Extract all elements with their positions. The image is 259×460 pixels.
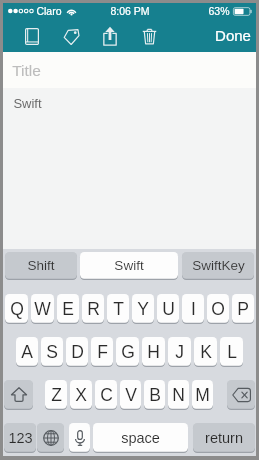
button[interactable]: Backspace — [227, 380, 255, 410]
button[interactable]: Z — [45, 380, 67, 410]
staticText: A — [21, 342, 33, 362]
button[interactable]: Tags — [58, 22, 84, 50]
button[interactable]: Swift — [3, 88, 256, 249]
staticText: S — [46, 342, 58, 362]
button[interactable]: Swift — [80, 252, 178, 280]
staticText: Swift — [114, 258, 144, 273]
button[interactable]: return — [193, 423, 255, 453]
staticText: B — [149, 385, 161, 405]
staticText: Shift — [27, 258, 55, 273]
staticText: R — [87, 299, 100, 319]
button[interactable]: D — [66, 337, 88, 367]
button[interactable]: space — [93, 423, 188, 453]
staticText: U — [162, 299, 175, 319]
button[interactable]: Done — [212, 23, 254, 48]
button[interactable]: Dictate — [69, 423, 90, 453]
staticText: K — [200, 342, 212, 362]
button[interactable]: P — [232, 294, 254, 324]
button[interactable]: W — [31, 294, 54, 324]
staticText: I — [191, 299, 196, 319]
button[interactable]: Notebook — [19, 22, 45, 50]
button[interactable]: E — [57, 294, 79, 324]
staticText: Swift — [13, 96, 42, 111]
button[interactable]: Title — [3, 52, 256, 88]
button[interactable]: Shift — [5, 252, 77, 280]
button[interactable]: C — [95, 380, 117, 410]
staticText: Claro — [36, 5, 62, 17]
button[interactable]: S — [41, 337, 63, 367]
button[interactable]: A — [16, 337, 38, 367]
staticText: N — [172, 385, 185, 405]
staticText: H — [147, 342, 160, 362]
staticText: Z — [51, 385, 62, 405]
staticText: Title — [12, 62, 41, 79]
staticText: V — [125, 385, 137, 405]
button[interactable]: G — [116, 337, 139, 367]
staticText: L — [227, 342, 237, 362]
staticText: D — [71, 342, 84, 362]
staticText: return — [205, 430, 243, 446]
button[interactable]: I — [182, 294, 204, 324]
staticText: O — [211, 299, 225, 319]
staticText: W — [34, 299, 51, 319]
staticText: 8:06 PM — [110, 5, 150, 17]
staticText: J — [175, 342, 184, 362]
button[interactable]: R — [82, 294, 104, 324]
staticText: Y — [137, 299, 149, 319]
button[interactable]: Y — [132, 294, 154, 324]
button[interactable]: V — [120, 380, 141, 410]
button[interactable]: B — [144, 380, 165, 410]
button[interactable]: U — [157, 294, 179, 324]
button[interactable]: Change keyboard — [37, 423, 64, 453]
staticText: T — [113, 299, 124, 319]
button[interactable]: Shift — [4, 380, 33, 410]
staticText: Done — [215, 27, 251, 44]
staticText: X — [75, 385, 87, 405]
button[interactable]: L — [220, 337, 243, 367]
staticText: SwiftKey — [192, 258, 245, 273]
staticText: space — [121, 430, 160, 446]
button[interactable]: Share — [97, 22, 123, 50]
button[interactable]: T — [107, 294, 129, 324]
staticText: P — [237, 299, 249, 319]
staticText: 123 — [8, 430, 33, 446]
staticText: G — [121, 342, 135, 362]
staticText: F — [97, 342, 108, 362]
button[interactable]: N — [168, 380, 189, 410]
button[interactable]: X — [70, 380, 92, 410]
button[interactable]: 123 — [4, 423, 36, 453]
button[interactable]: O — [207, 294, 229, 324]
staticText: C — [100, 385, 113, 405]
button[interactable]: Delete — [136, 22, 162, 50]
staticText: Q — [10, 299, 24, 319]
button[interactable]: K — [194, 337, 217, 367]
staticText: 63% — [208, 5, 230, 17]
button[interactable]: SwiftKey — [182, 252, 254, 280]
staticText: M — [195, 385, 210, 405]
button[interactable]: H — [142, 337, 165, 367]
button[interactable]: M — [192, 380, 213, 410]
button[interactable]: J — [168, 337, 191, 367]
button[interactable]: Q — [5, 294, 28, 324]
staticText: E — [62, 299, 74, 319]
button[interactable]: F — [91, 337, 113, 367]
